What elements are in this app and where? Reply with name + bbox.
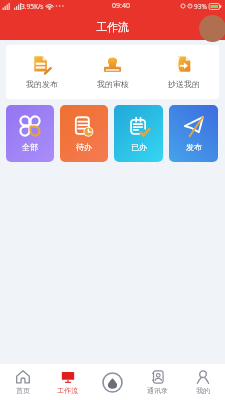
button[interactable]: 已办: [114, 105, 163, 162]
button[interactable]: Profile avatar: [199, 15, 225, 42]
button[interactable]: 我的审核: [77, 45, 148, 99]
button[interactable]: 发布: [169, 105, 218, 162]
staticText: 工作流: [96, 20, 129, 34]
staticText: 工作流: [57, 386, 78, 395]
staticText: 首页: [16, 386, 30, 395]
staticText: 通讯录: [147, 386, 168, 395]
button[interactable]: 抄送我的: [148, 45, 219, 99]
button[interactable]: Scan: [90, 364, 135, 400]
staticText: 已办: [131, 142, 147, 152]
button[interactable]: 工作流: [45, 364, 90, 400]
staticText: 93%: [194, 2, 207, 11]
button[interactable]: 通讯录: [135, 364, 180, 400]
staticText: 我的: [196, 386, 210, 395]
staticText: 我的发布: [26, 79, 58, 89]
staticText: 3.95K/s: [21, 2, 44, 11]
button[interactable]: 我的发布: [6, 45, 77, 99]
staticText: 抄送我的: [168, 79, 200, 89]
button[interactable]: 全部: [6, 105, 54, 162]
button[interactable]: 首页: [0, 364, 45, 400]
staticText: 发布: [186, 142, 202, 152]
button[interactable]: 我的: [180, 364, 225, 400]
button[interactable]: 待办: [60, 105, 108, 162]
staticText: 全部: [22, 142, 38, 152]
staticText: 09:40: [112, 1, 130, 11]
staticText: 我的审核: [97, 79, 129, 89]
staticText: 待办: [76, 142, 92, 152]
